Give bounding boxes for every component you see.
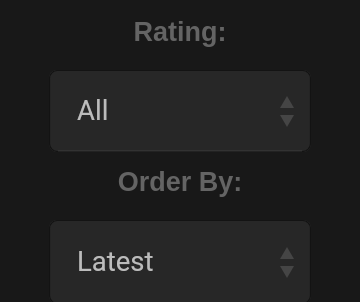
staticText: Rating: (0, 17, 360, 47)
staticText: Latest (77, 245, 154, 277)
staticText: All (77, 94, 109, 126)
staticText: Order By: (0, 167, 360, 197)
button[interactable]: Order by: Latest (49, 220, 311, 302)
button[interactable]: Rating filter: All (49, 70, 311, 152)
